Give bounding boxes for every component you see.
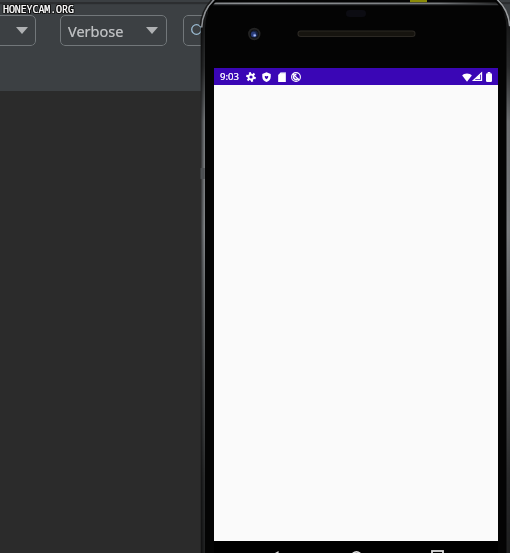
button[interactable]: Home — [339, 541, 373, 553]
staticText: HONEYCAM.ORG — [2, 2, 73, 16]
staticText: HONEYCAM.ORG — [4, 1, 75, 15]
staticText: HONEYCAM.ORG — [3, 3, 74, 17]
staticText: HONEYCAM.ORG — [2, 3, 73, 17]
button[interactable]: Verbose — [60, 15, 167, 46]
button[interactable]: Search — [183, 15, 249, 46]
button[interactable]: Recents — [420, 541, 454, 553]
staticText: HONEYCAM.ORG — [3, 2, 74, 16]
staticText: 9:03 — [220, 70, 239, 83]
staticText: HONEYCAM.ORG — [2, 1, 73, 15]
staticText: HONEYCAM.ORG — [4, 3, 75, 17]
staticText: Verbose — [68, 21, 124, 41]
button[interactable] — [0, 15, 36, 46]
button[interactable]: Back — [257, 541, 291, 553]
staticText: HONEYCAM.ORG — [4, 2, 75, 16]
staticText: HONEYCAM.ORG — [3, 1, 74, 15]
